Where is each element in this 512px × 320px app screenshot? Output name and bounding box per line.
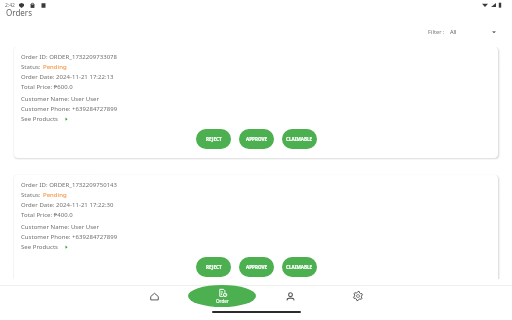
staticText: Pending	[43, 63, 67, 71]
button[interactable]: CLAIMABLE	[282, 129, 317, 149]
button[interactable]: See Products	[21, 115, 68, 124]
button[interactable]: REJECT	[196, 257, 231, 277]
staticText: CLAIMABLE	[286, 136, 313, 142]
staticText: Order ID: ORDER_1732209733078	[21, 53, 118, 61]
staticText: Order Date: 2024-11-21 17:22:13	[21, 73, 114, 81]
button[interactable]: Order	[188, 285, 256, 307]
staticText: CLAIMABLE	[286, 264, 313, 270]
staticText: APPROVE	[246, 264, 268, 270]
staticText: Orders	[6, 7, 32, 18]
button[interactable]: Settings	[324, 285, 391, 307]
staticText: Pending	[43, 191, 67, 199]
staticText: Customer Name: User User	[21, 95, 100, 103]
button[interactable]: REJECT	[196, 129, 231, 149]
staticText: Customer Phone: +639284727899	[21, 233, 118, 241]
button[interactable]: See Products	[21, 243, 68, 252]
button[interactable]: Profile	[257, 285, 324, 307]
staticText: Customer Phone: +639284727899	[21, 105, 118, 113]
staticText: Total Price: ₱400.0	[21, 211, 73, 219]
button[interactable]: CLAIMABLE	[282, 257, 317, 277]
staticText: APPROVE	[246, 136, 268, 142]
button[interactable]: Home	[121, 285, 188, 307]
staticText: REJECT	[206, 264, 222, 270]
staticText: Order	[216, 298, 229, 304]
button[interactable]: APPROVE	[239, 129, 274, 149]
staticText: Total Price: ₱600.0	[21, 83, 73, 91]
staticText: Filter :	[428, 28, 445, 36]
button[interactable]: APPROVE	[239, 257, 274, 277]
staticText: REJECT	[206, 136, 222, 142]
staticText: Order ID: ORDER_1732209750143	[21, 181, 118, 189]
staticText: Status:	[21, 63, 43, 71]
staticText: See Products	[21, 115, 59, 123]
staticText: All	[450, 28, 457, 36]
staticText: Status:	[21, 191, 43, 199]
button[interactable]: Filter :	[426, 26, 498, 38]
staticText: See Products	[21, 243, 59, 251]
staticText: 2:42	[5, 2, 15, 9]
staticText: Customer Name: User User	[21, 223, 100, 231]
staticText: Order Date: 2024-11-21 17:22:30	[21, 201, 114, 209]
